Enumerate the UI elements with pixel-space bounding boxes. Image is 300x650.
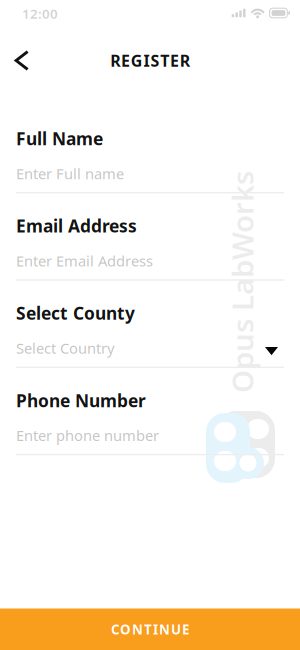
staticText: Email Address xyxy=(16,214,137,237)
button[interactable]: Back xyxy=(0,38,44,82)
staticText: Phone Number xyxy=(16,389,146,412)
staticText: REGISTER xyxy=(110,50,190,71)
staticText: 12:00 xyxy=(22,5,58,22)
staticText: Full Name xyxy=(16,127,103,150)
staticText: Opus LabWorks xyxy=(131,262,300,301)
staticText: Enter Full name xyxy=(16,164,124,183)
staticText: Enter Email Address xyxy=(16,251,153,271)
staticText: Enter phone number xyxy=(16,426,159,445)
staticText: Select Country xyxy=(16,338,114,358)
staticText: Select County xyxy=(16,302,135,325)
staticText: CONTINUE xyxy=(111,620,189,638)
button[interactable]: CONTINUE xyxy=(0,608,300,650)
